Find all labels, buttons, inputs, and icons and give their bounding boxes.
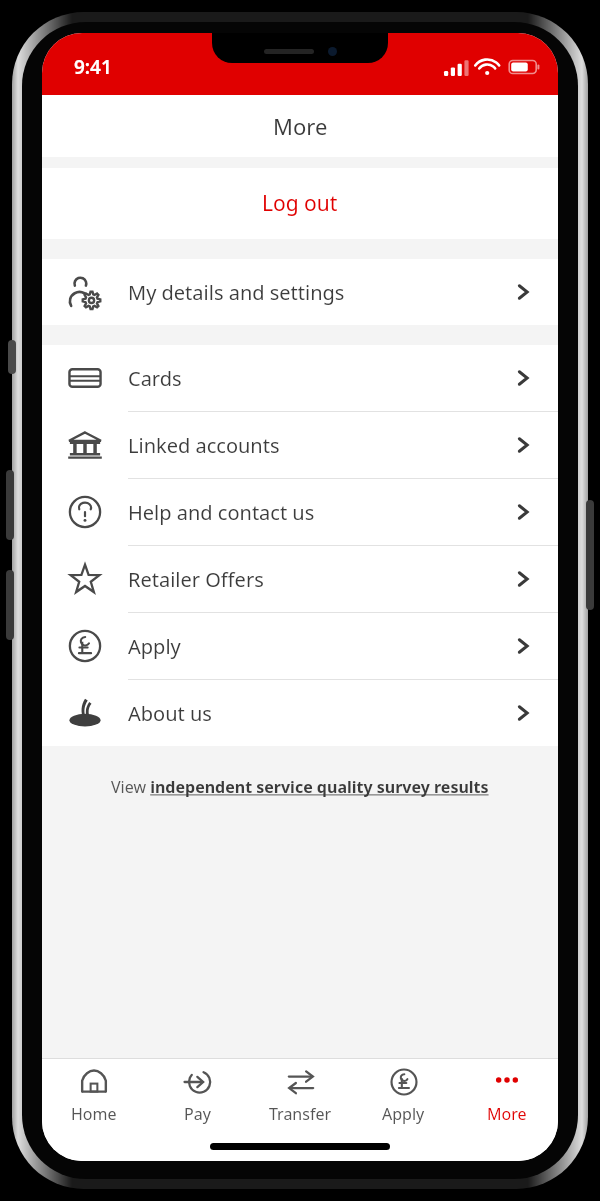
staticText: Help and contact us [128,499,510,526]
staticText: Retailer Offers [128,566,510,593]
button[interactable]: My details and settings [42,259,558,325]
staticText: More [487,1103,527,1125]
staticText: Linked accounts [128,432,510,459]
button[interactable]: Linked accounts [42,412,558,478]
staticText: View independent service quality survey … [111,776,489,798]
button[interactable]: Home [42,1059,146,1131]
staticText: Cards [128,365,510,392]
staticText: 9:41 [74,54,112,80]
button[interactable]: Log out [42,168,558,239]
button[interactable]: Transfer [249,1059,352,1131]
button[interactable]: Help and contact us [42,479,558,545]
button[interactable]: Retailer Offers [42,546,558,612]
staticText: More [273,111,328,141]
button[interactable]: Apply [352,1059,455,1131]
staticText: About us [128,700,510,727]
staticText: Log out [262,189,338,218]
button[interactable]: More [455,1059,558,1131]
button[interactable]: Cards [42,345,558,411]
staticText: My details and settings [128,279,510,306]
button[interactable]: Pay [146,1059,249,1131]
staticText: Apply [128,633,510,660]
staticText: Pay [184,1103,211,1125]
staticText: Apply [382,1103,425,1125]
button[interactable]: Apply [42,613,558,679]
button[interactable]: About us [42,680,558,746]
staticText: Home [71,1103,117,1125]
staticText: Transfer [269,1103,332,1125]
button[interactable]: View independent service quality survey … [42,772,558,802]
